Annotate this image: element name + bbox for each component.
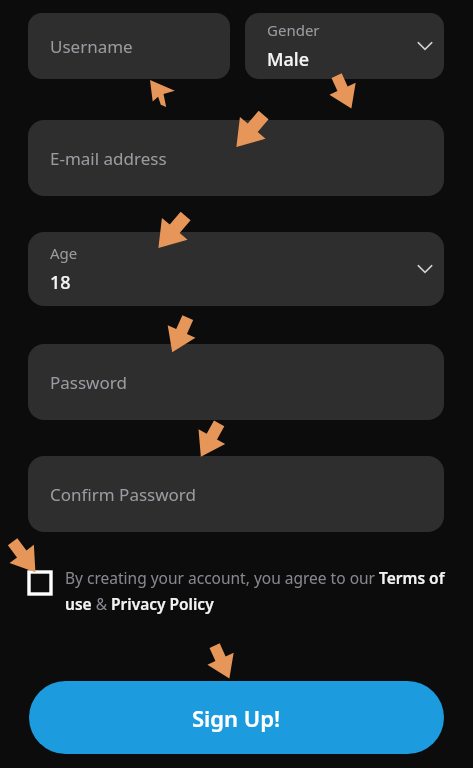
button[interactable]: Sign Up! xyxy=(29,681,444,754)
button[interactable]: Password xyxy=(28,344,444,420)
staticText: Password xyxy=(50,371,127,394)
staticText: Male xyxy=(267,47,310,72)
staticText: 18 xyxy=(50,270,71,295)
staticText: Age xyxy=(50,243,78,263)
staticText: By creating your account, you agree to o… xyxy=(65,567,445,615)
staticText: Gender xyxy=(267,20,320,40)
button[interactable]: Username xyxy=(28,13,230,79)
button[interactable]: Age xyxy=(28,232,444,306)
other: Expand xyxy=(412,256,438,282)
button[interactable]: Accept terms checkbox xyxy=(29,572,51,594)
staticText: Username xyxy=(50,35,133,58)
button[interactable]: Gender xyxy=(245,13,444,79)
staticText: Sign Up! xyxy=(192,703,281,733)
button[interactable]: By creating your account, you agree to o… xyxy=(65,567,445,615)
button[interactable]: Confirm Password xyxy=(28,456,444,532)
staticText: Confirm Password xyxy=(50,483,196,506)
staticText: E-mail address xyxy=(50,147,167,170)
other: Expand xyxy=(412,33,438,59)
button[interactable]: E-mail address xyxy=(28,120,444,196)
